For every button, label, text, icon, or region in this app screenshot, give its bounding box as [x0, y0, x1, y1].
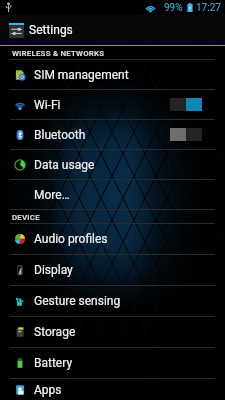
button[interactable]: On — [170, 98, 202, 111]
staticText: SIM management — [34, 68, 129, 82]
button[interactable]: Storage — [0, 317, 225, 347]
staticText: More… — [34, 188, 70, 202]
button[interactable]: Bluetooth — [0, 120, 225, 149]
staticText: Audio profiles — [34, 232, 108, 246]
staticText: Settings — [29, 23, 73, 37]
staticText: 99% — [164, 2, 183, 14]
button[interactable]: Audio profiles — [0, 224, 225, 254]
staticText: WIRELESS & NETWORKS — [12, 49, 105, 58]
staticText: Display — [34, 263, 73, 277]
button[interactable]: Gesture sensing — [0, 286, 225, 316]
staticText: Battery — [34, 356, 73, 370]
staticText: Bluetooth — [34, 128, 86, 142]
button[interactable]: Display — [0, 255, 225, 285]
staticText: DEVICE — [12, 213, 40, 222]
button[interactable]: Apps — [0, 379, 225, 400]
staticText: Wi-Fi — [34, 98, 61, 112]
button[interactable]: Wi-Fi — [0, 90, 225, 119]
staticText: Gesture sensing — [34, 294, 121, 308]
button[interactable]: Off — [170, 128, 202, 141]
button[interactable]: Battery — [0, 348, 225, 378]
staticText: Data usage — [34, 158, 95, 172]
button[interactable]: SIM management — [0, 60, 225, 89]
button[interactable]: Settings — [0, 15, 225, 45]
button[interactable]: More… — [0, 180, 225, 209]
staticText: 17:27 — [196, 2, 221, 14]
staticText: Storage — [34, 325, 76, 339]
button[interactable]: Data usage — [0, 150, 225, 179]
staticText: Apps — [34, 383, 62, 397]
